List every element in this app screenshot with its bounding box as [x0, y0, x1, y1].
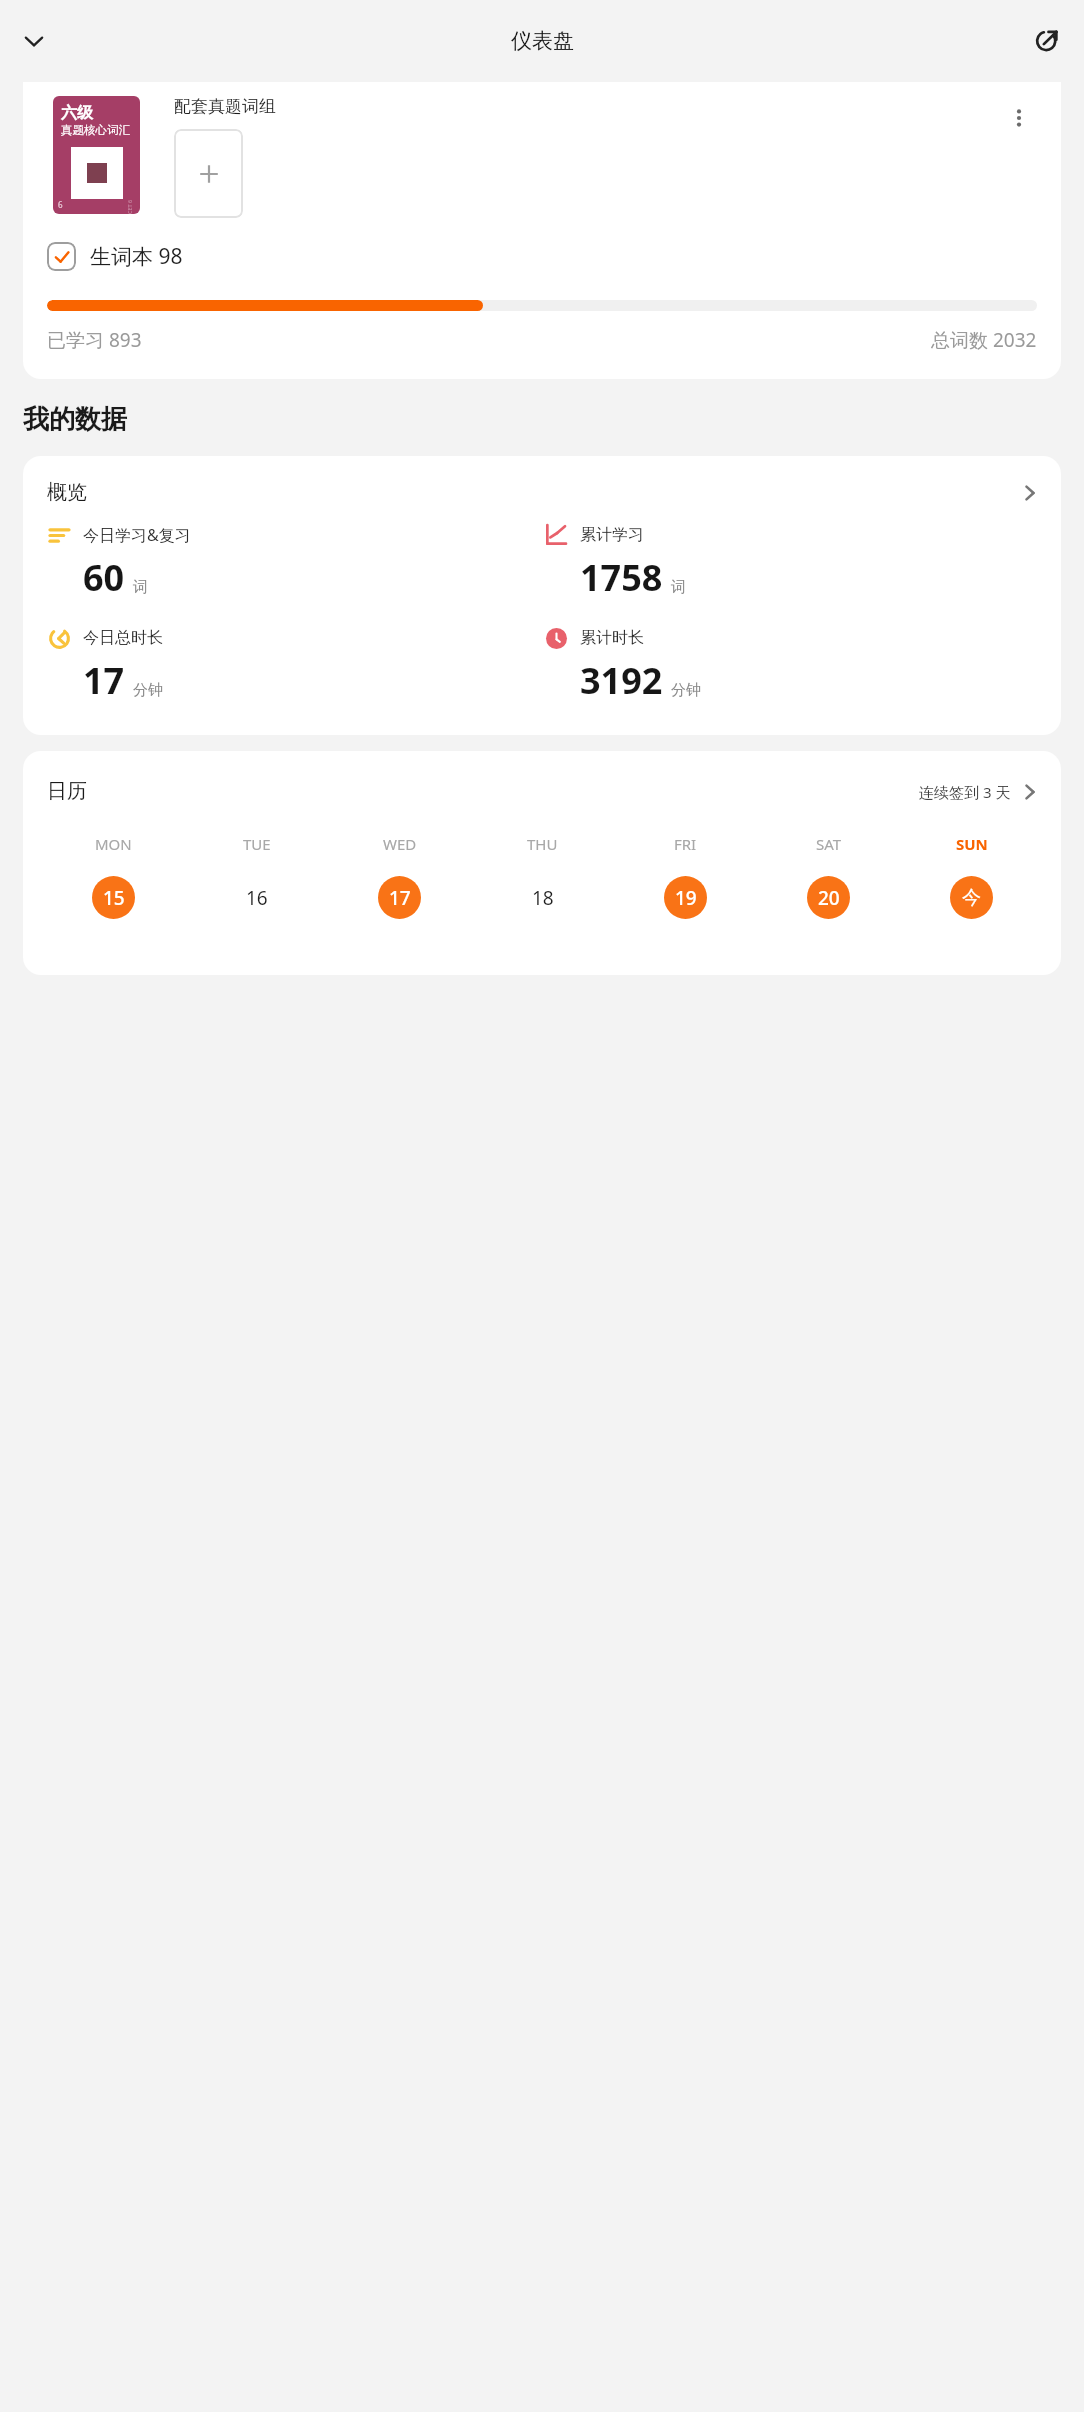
button[interactable]: 日历 [23, 751, 1061, 804]
button[interactable]: 15 [92, 876, 135, 919]
staticText: 总词数 2032 [931, 327, 1037, 353]
button[interactable]: Add word group [174, 129, 243, 218]
button[interactable]: 18 [521, 876, 564, 919]
staticText: 17 [389, 885, 411, 911]
button[interactable]: 今日学习&复习 [47, 523, 544, 602]
staticText: 累计时长 [580, 628, 644, 648]
staticText: 今日学习&复习 [83, 524, 191, 546]
staticText: 真题核心词汇 [61, 123, 130, 137]
staticText: 17 [83, 656, 125, 705]
staticText: 60 [83, 553, 125, 602]
button[interactable]: 20 [807, 876, 850, 919]
staticText: SAT [816, 834, 842, 854]
button[interactable]: 生词本 98 [47, 242, 183, 271]
staticText: TUE [243, 834, 271, 854]
staticText: 生词本 98 [90, 242, 183, 271]
button[interactable]: 累计学习 [544, 523, 1041, 602]
button[interactable]: Share [1024, 17, 1072, 65]
staticText: 六级 [61, 103, 93, 123]
staticText: THU [527, 834, 558, 854]
staticText: 20 [818, 885, 840, 911]
button[interactable]: 今日总时长 [47, 626, 544, 705]
staticText: 16 [246, 885, 268, 911]
staticText: 概览 [47, 480, 1019, 505]
staticText: MON [95, 834, 132, 854]
button[interactable]: 概览 [23, 456, 1061, 509]
staticText: 配套真题词组 [174, 96, 276, 117]
staticText: 分钟 [671, 681, 701, 700]
staticText: 分钟 [133, 681, 163, 700]
staticText: 我的数据 [23, 403, 127, 436]
staticText: 累计学习 [580, 525, 644, 545]
staticText: 词 [133, 578, 148, 597]
staticText: 15 [103, 885, 125, 911]
staticText: 仪表盘 [511, 28, 574, 54]
staticText: 已学习 893 [47, 327, 142, 353]
staticText: 连续签到 3 天 [919, 782, 1011, 802]
button[interactable]: 16 [235, 876, 278, 919]
staticText: WED [383, 834, 417, 854]
staticText: 日历 [47, 779, 919, 804]
button[interactable]: 17 [378, 876, 421, 919]
staticText: 今 [962, 886, 981, 910]
staticText: SUN [956, 834, 988, 854]
staticText: 1758 [580, 553, 663, 602]
button[interactable]: 19 [664, 876, 707, 919]
button[interactable]: More options [997, 96, 1041, 140]
button[interactable]: Collapse [10, 17, 58, 65]
staticText: 3192 [580, 656, 663, 705]
button[interactable]: 累计时长 [544, 626, 1041, 705]
staticText: 19 [675, 885, 697, 911]
staticText: CET 6 [126, 199, 133, 214]
staticText: 今日总时长 [83, 628, 163, 648]
staticText: 18 [532, 885, 554, 911]
staticText: 6 [58, 199, 63, 210]
staticText: FRI [674, 834, 697, 854]
staticText: 词 [671, 578, 686, 597]
button[interactable]: 今 [950, 876, 993, 919]
button[interactable]: 六级 [23, 82, 1061, 379]
